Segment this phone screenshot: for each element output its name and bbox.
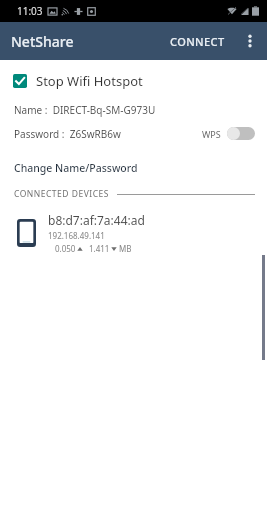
staticText: NetShare bbox=[11, 32, 74, 51]
staticText: 192.168.49.141 bbox=[48, 230, 105, 241]
button[interactable]: Change Name/Password bbox=[0, 158, 152, 178]
staticText: Password : Z6SwRB6w bbox=[14, 127, 121, 141]
staticText: 1.411 bbox=[89, 243, 110, 254]
staticText: CONNECTED DEVICES bbox=[14, 188, 109, 200]
staticText: MB bbox=[119, 243, 132, 254]
button[interactable]: Stop Wifi Hotspot bbox=[0, 60, 267, 98]
staticText: Change Name/Password bbox=[14, 161, 138, 175]
button[interactable]: WPS bbox=[202, 124, 255, 143]
staticText: WPS bbox=[202, 128, 221, 140]
staticText: b8:d7:af:7a:44:ad bbox=[48, 212, 145, 228]
staticText: Name : DIRECT-Bq-SM-G973U bbox=[14, 103, 156, 117]
staticText: 0.050 bbox=[55, 243, 76, 254]
staticText: CONNECT bbox=[170, 34, 225, 49]
button[interactable]: CONNECT bbox=[162, 25, 233, 58]
staticText: Stop Wifi Hotspot bbox=[36, 72, 143, 90]
button[interactable]: b8:d7:af:7a:44:ad bbox=[0, 210, 267, 260]
staticText: 11:03 bbox=[17, 4, 43, 18]
button[interactable]: More options bbox=[233, 24, 267, 58]
